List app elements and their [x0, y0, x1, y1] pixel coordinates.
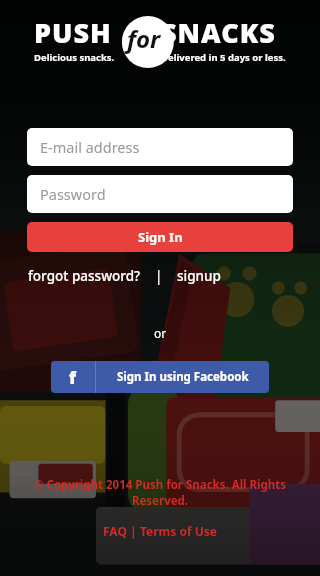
staticText: signup	[177, 267, 221, 285]
staticText: or	[154, 325, 167, 341]
staticText: SNACKS	[161, 14, 276, 51]
button[interactable]: Terms of Use	[140, 523, 217, 539]
button[interactable]: FAQ	[103, 523, 127, 539]
staticText: for	[127, 22, 161, 55]
button[interactable]: Password	[27, 175, 293, 213]
button[interactable]: Facebook	[51, 361, 269, 393]
staticText: |	[155, 267, 163, 285]
staticText: Password	[40, 184, 106, 204]
button[interactable]: signup	[177, 267, 221, 285]
button[interactable]: forgot password?	[28, 267, 141, 285]
staticText: Terms of Use	[140, 523, 217, 539]
staticText: © Copyright 2014 Push for Snacks. All Ri…	[18, 477, 302, 509]
staticText: FAQ	[103, 523, 127, 539]
staticText: Sign In using Facebook	[117, 369, 249, 385]
staticText: Sign In	[138, 228, 183, 246]
staticText: E-mail address	[40, 137, 140, 157]
staticText: |	[127, 523, 140, 539]
staticText: PUSH	[34, 14, 112, 51]
staticText: f	[69, 366, 77, 389]
other: Facebook	[51, 361, 95, 393]
staticText: forgot password?	[28, 267, 141, 285]
staticText: Delicious snacks.	[34, 51, 115, 64]
button[interactable]: Sign In	[27, 222, 293, 252]
staticText: Delivered in 5 days or less.	[161, 51, 286, 64]
button[interactable]: E-mail address	[27, 128, 293, 166]
